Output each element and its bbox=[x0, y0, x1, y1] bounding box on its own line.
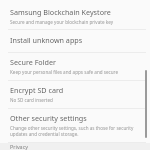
staticText: Samsung Blockchain Keystore bbox=[10, 7, 111, 17]
staticText: Privacy bbox=[10, 143, 28, 150]
button[interactable]: Samsung Blockchain Keystore bbox=[0, 5, 150, 29]
staticText: Keep your personal files and apps safe a… bbox=[10, 69, 118, 75]
button[interactable]: Install unknown apps bbox=[0, 30, 150, 52]
staticText: Secure Folder bbox=[10, 57, 57, 67]
button[interactable]: Secure Folder bbox=[0, 53, 150, 80]
staticText: Secure and manage your blockchain privat… bbox=[10, 19, 113, 25]
staticText: No SD card inserted bbox=[10, 97, 53, 103]
staticText: Encrypt SD card bbox=[10, 85, 64, 95]
button[interactable]: Other security settings bbox=[0, 109, 150, 142]
button[interactable]: Encrypt SD card bbox=[0, 81, 150, 108]
staticText: Install unknown apps bbox=[10, 35, 83, 45]
staticText: Change other security settings, such as … bbox=[10, 125, 138, 137]
staticText: Other security settings bbox=[10, 113, 87, 123]
